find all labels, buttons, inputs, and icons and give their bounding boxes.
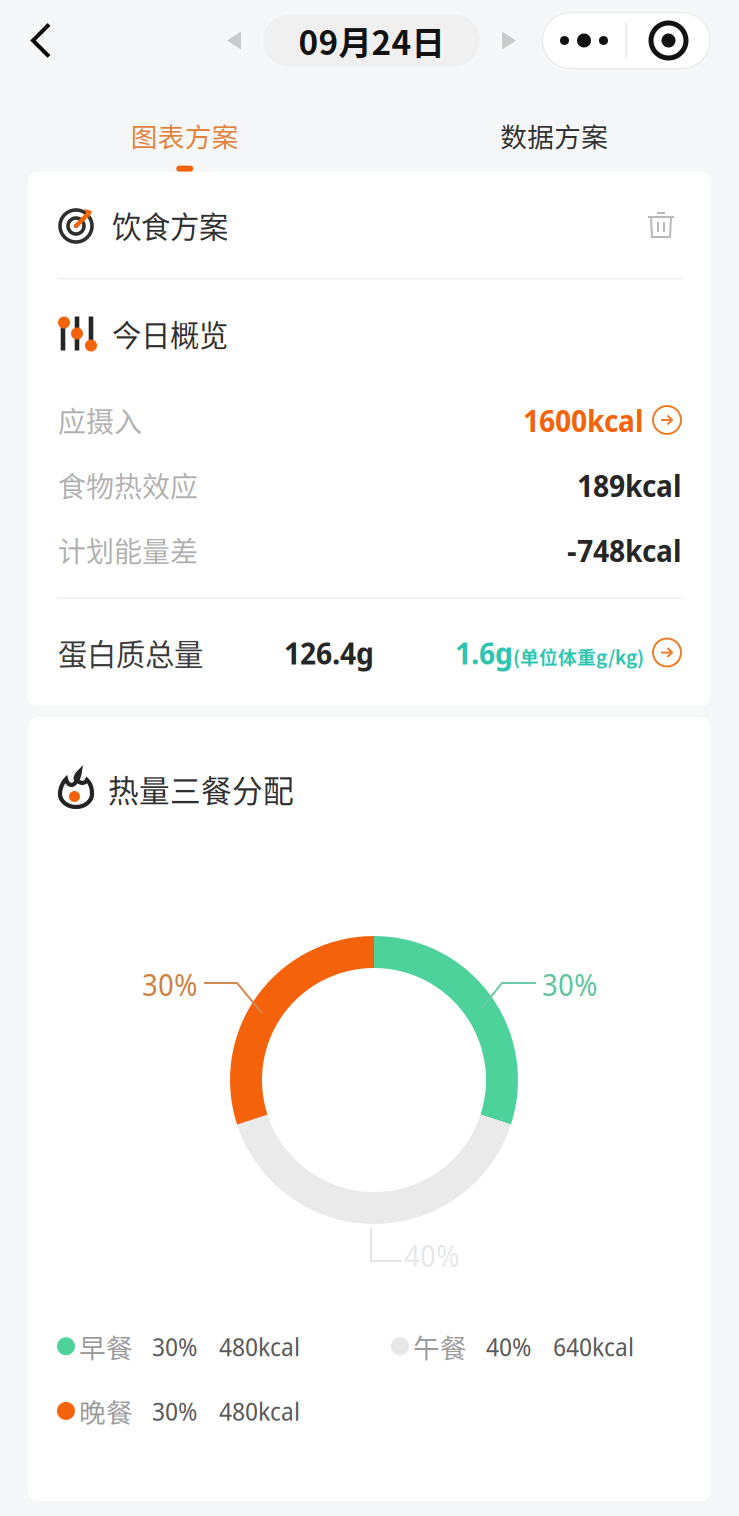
button[interactable]: 图表方案	[0, 81, 369, 172]
staticText: 126.4g	[284, 632, 374, 673]
staticText: 今日概览	[112, 312, 228, 355]
staticText: 食物热效应	[58, 465, 198, 505]
staticText: 189kcal	[577, 464, 681, 506]
staticText: 30%	[152, 1329, 197, 1364]
button[interactable]: 前一天	[226, 22, 242, 58]
staticText: -748kcal	[567, 529, 681, 571]
staticText: 09月24日	[298, 16, 444, 65]
button[interactable]: 数据方案	[369, 81, 739, 172]
button[interactable]: 09月24日	[242, 14, 501, 66]
staticText: 30%	[152, 1394, 197, 1428]
staticText: 图表方案	[131, 116, 239, 155]
button[interactable]: 应摄入	[28, 387, 711, 452]
button[interactable]: 关闭	[627, 12, 710, 68]
staticText: 1.6g	[455, 632, 513, 673]
button[interactable]: 蛋白质总量	[28, 599, 711, 706]
staticText: 热量三餐分配	[108, 767, 294, 811]
staticText: 40%	[404, 1234, 460, 1276]
staticText: 早餐	[79, 1327, 133, 1366]
staticText: 30%	[542, 963, 598, 1005]
staticText: 1600kcal	[523, 399, 643, 441]
staticText: 40%	[486, 1329, 531, 1364]
button[interactable]: 食物热效应	[28, 452, 711, 517]
staticText: 晚餐	[79, 1392, 133, 1430]
staticText: 480kcal	[219, 1394, 300, 1428]
button[interactable]: 返回	[0, 14, 60, 66]
staticText: 480kcal	[219, 1329, 300, 1364]
staticText: 蛋白质总量	[58, 631, 203, 674]
staticText: 数据方案	[500, 116, 608, 155]
button[interactable]: 删除	[641, 204, 681, 246]
button[interactable]: 后一天	[501, 22, 517, 58]
staticText: 饮食方案	[112, 204, 228, 246]
button[interactable]: 更多	[542, 12, 625, 68]
staticText: 应摄入	[58, 400, 142, 440]
staticText: 午餐	[413, 1327, 467, 1366]
staticText: 30%	[142, 963, 198, 1005]
button[interactable]: 计划能量差	[28, 517, 711, 582]
staticText: (单位体重g/kg)	[513, 643, 644, 670]
staticText: 计划能量差	[58, 530, 198, 570]
staticText: 640kcal	[553, 1329, 634, 1364]
